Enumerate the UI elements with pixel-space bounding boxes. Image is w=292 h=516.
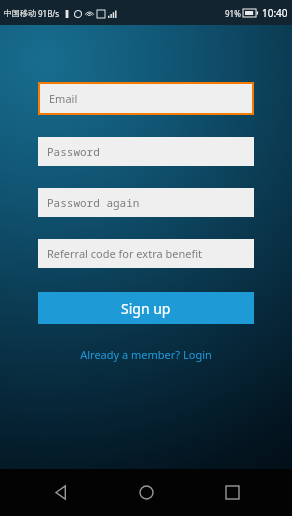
staticText: Email [49,91,78,106]
button[interactable]: Recent apps [206,469,258,516]
staticText: Referral code for extra benefit [47,246,203,261]
button[interactable]: Referral code for extra benefit [38,239,254,268]
button[interactable]: Already a member? Login [38,341,254,367]
staticText: 91% [225,8,241,19]
button[interactable]: Password again [38,188,254,217]
staticText: 10:40 [262,6,288,20]
staticText: Password [47,144,100,159]
staticText: Already a member? Login [80,347,212,362]
staticText: 中国移动 [4,8,36,18]
staticText: 91B/s [38,8,60,19]
button[interactable]: Email [40,84,252,113]
button[interactable]: Back [34,469,86,516]
staticText: Password again [47,195,140,210]
button[interactable]: Home [120,469,172,516]
button[interactable]: Sign up [38,292,254,324]
staticText: Sign up [121,299,171,318]
button[interactable]: Password [38,137,254,166]
